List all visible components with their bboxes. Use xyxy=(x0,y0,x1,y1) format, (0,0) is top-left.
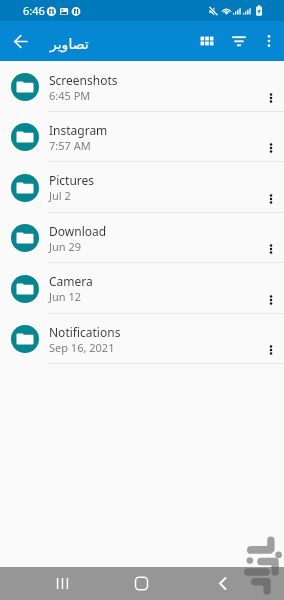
staticText: Camera xyxy=(49,273,93,289)
button[interactable]: Recent apps xyxy=(47,568,78,599)
staticText: Jul 2 xyxy=(49,188,71,203)
button[interactable]: More options xyxy=(258,337,284,363)
staticText: 7:57 AM xyxy=(49,138,91,153)
staticText: Instagram xyxy=(49,122,108,138)
staticText: Pictures xyxy=(49,172,95,188)
staticText: Jun 29 xyxy=(49,239,82,254)
button[interactable]: Grid view xyxy=(193,27,221,55)
button[interactable]: Sort xyxy=(225,27,253,55)
button[interactable]: Camera xyxy=(0,263,284,314)
button[interactable]: More options xyxy=(258,186,284,212)
staticText: تصاویر xyxy=(50,36,89,52)
button[interactable]: More options xyxy=(258,85,284,111)
staticText: Sep 16, 2021 xyxy=(49,340,115,355)
button[interactable]: Home xyxy=(126,568,157,599)
staticText: 6:45 PM xyxy=(49,88,91,103)
staticText: Notifications xyxy=(49,324,121,340)
button[interactable]: Download xyxy=(0,213,284,263)
button[interactable]: Instagram xyxy=(0,112,284,162)
staticText: Jun 12 xyxy=(49,289,82,304)
button[interactable]: More options xyxy=(258,135,284,161)
button[interactable]: More options xyxy=(255,27,283,55)
button[interactable]: Notifications xyxy=(0,314,284,364)
button[interactable]: More options xyxy=(258,287,284,313)
staticText: Screenshots xyxy=(49,72,118,88)
button[interactable]: Pictures xyxy=(0,162,284,213)
staticText: 6:46 xyxy=(23,3,45,18)
button[interactable]: Back xyxy=(6,27,34,55)
button[interactable]: Screenshots xyxy=(0,62,284,112)
button[interactable]: More options xyxy=(258,236,284,262)
button[interactable]: Back xyxy=(207,568,238,599)
staticText: Download xyxy=(49,223,107,239)
